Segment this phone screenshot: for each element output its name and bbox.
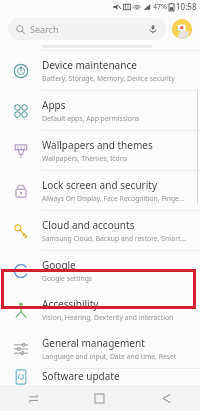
staticText: Software update (42, 369, 120, 383)
staticText: General management (42, 336, 145, 350)
staticText: Always On Display, Face Recognition, Fin… (42, 194, 185, 203)
staticText: Search (30, 23, 59, 35)
button[interactable]: Search (8, 18, 166, 40)
staticText: Vision, Hearing, Dexterity and interacti… (42, 313, 174, 322)
staticText: Cloud and accounts (42, 218, 135, 232)
staticText: Wallpapers, Themes, Icons (42, 154, 128, 163)
staticText: 47% (153, 2, 167, 12)
staticText: Google settings (42, 274, 93, 283)
button[interactable]: Device maintenance (0, 51, 200, 91)
button[interactable]: Home (66, 385, 133, 411)
button[interactable]: Wallpapers and themes (0, 131, 200, 171)
staticText: Accessibility (42, 297, 99, 311)
staticText: Language and input, Date and time, Reset (42, 352, 177, 361)
button[interactable]: Accessibility (0, 290, 200, 329)
button[interactable]: Google (0, 251, 200, 290)
staticText: Lock screen and security (42, 178, 157, 192)
button[interactable]: Recents (0, 385, 66, 411)
staticText: Apps (42, 98, 66, 112)
button[interactable]: Back (133, 385, 200, 411)
staticText: Default apps, App permissions (42, 114, 140, 123)
button[interactable]: General management (0, 329, 200, 369)
staticText: 10:58 (176, 1, 197, 12)
staticText: Battery, Storage, Memory, Device securit… (42, 74, 175, 83)
button[interactable]: Lock screen and security (0, 171, 200, 211)
button[interactable]: Apps (0, 91, 200, 131)
other: Voice search (148, 24, 158, 34)
button[interactable]: Profile (172, 19, 192, 39)
button[interactable]: Cloud and accounts (0, 211, 200, 251)
button[interactable]: Software update (0, 369, 200, 385)
staticText: Wallpapers and themes (42, 138, 153, 152)
staticText: Samsung Cloud, Backup and restore, Smart… (42, 234, 186, 243)
staticText: Google (42, 258, 76, 272)
staticText: Device maintenance (42, 58, 137, 72)
